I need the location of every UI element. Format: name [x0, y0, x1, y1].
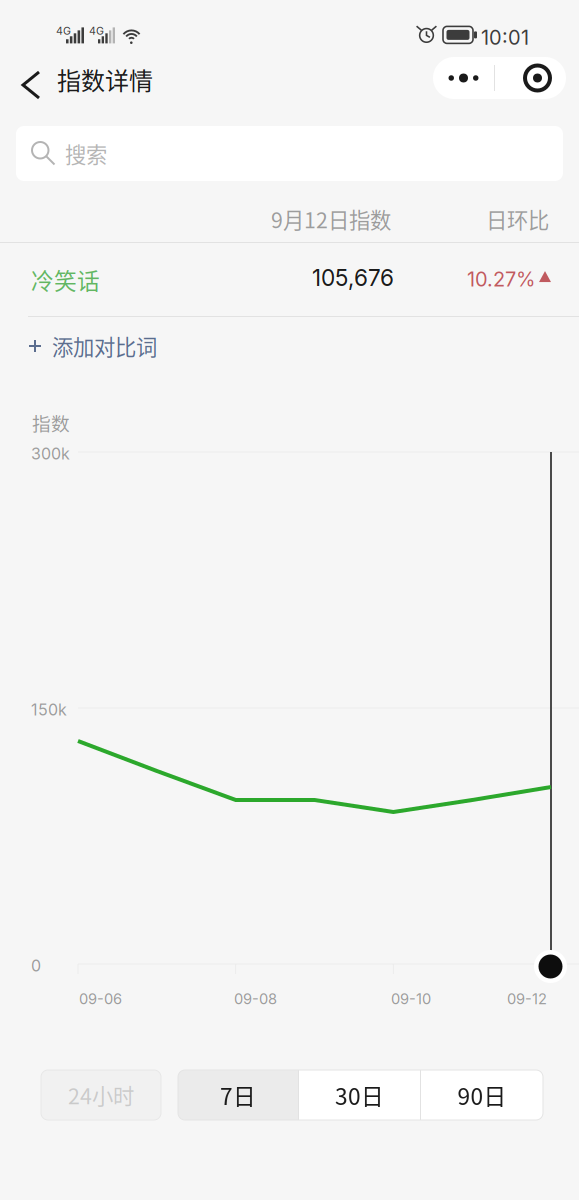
- button[interactable]: Close mini program: [495, 57, 566, 99]
- button[interactable]: 24小时: [41, 1070, 161, 1120]
- staticText: 4G: [56, 24, 71, 37]
- staticText: 150k: [31, 700, 67, 719]
- button[interactable]: 添加对比词: [0, 326, 579, 366]
- staticText: 4G: [89, 24, 104, 37]
- staticText: 10.27%: [467, 267, 535, 291]
- button[interactable]: 搜索: [16, 126, 563, 181]
- staticText: 105,676: [312, 264, 394, 291]
- staticText: 90日: [457, 1079, 506, 1111]
- staticText: 09-08: [234, 990, 277, 1008]
- staticText: 300k: [31, 444, 70, 463]
- button[interactable]: 30日: [299, 1070, 420, 1120]
- button[interactable]: 7日: [178, 1070, 298, 1120]
- button[interactable]: More options: [433, 57, 494, 99]
- staticText: 指数详情: [57, 62, 153, 97]
- staticText: 09-06: [79, 990, 122, 1008]
- button[interactable]: 90日: [421, 1070, 543, 1120]
- staticText: 0: [31, 956, 41, 975]
- staticText: 日环比: [486, 204, 549, 234]
- button[interactable]: Back: [1, 57, 61, 113]
- staticText: 搜索: [65, 138, 107, 169]
- staticText: 09-12: [507, 990, 547, 1008]
- staticText: 24小时: [68, 1080, 134, 1110]
- staticText: 添加对比词: [52, 331, 157, 361]
- staticText: 09-10: [391, 990, 431, 1008]
- staticText: 10:01: [481, 25, 529, 50]
- staticText: 指数: [32, 409, 70, 436]
- staticText: 7日: [220, 1079, 256, 1111]
- staticText: 9月12日指数: [271, 204, 391, 234]
- staticText: 冷笑话: [31, 263, 100, 296]
- staticText: 30日: [335, 1079, 384, 1111]
